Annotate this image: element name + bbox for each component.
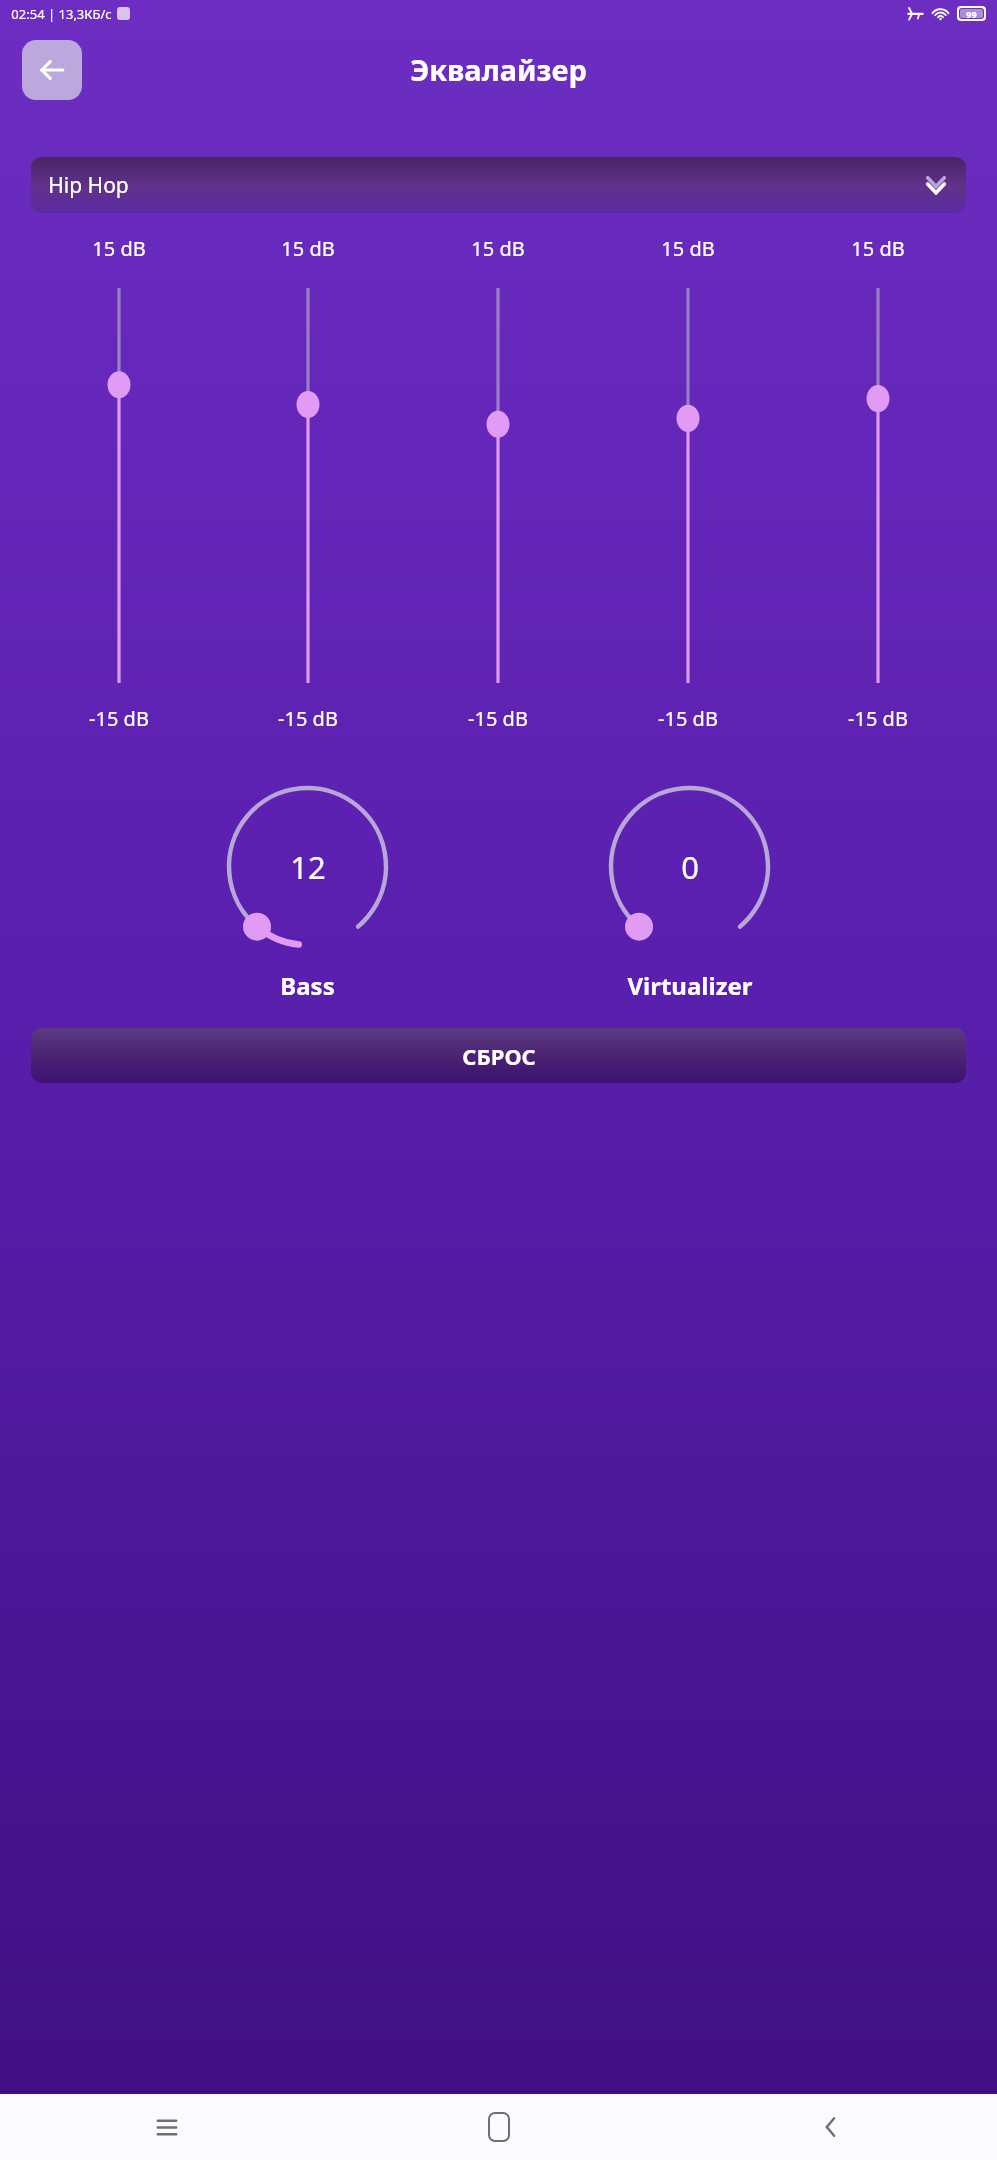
staticText: -15 dB	[278, 705, 338, 732]
staticText: 15 dB	[661, 235, 715, 262]
button[interactable]: Back	[665, 2094, 997, 2160]
staticText: -15 dB	[848, 705, 908, 732]
button[interactable]	[473, 288, 523, 683]
staticText: Эквалайзер	[410, 50, 587, 89]
staticText: Hip Hop	[48, 171, 129, 200]
button[interactable]: Hip Hop	[31, 157, 966, 213]
button[interactable]: Home	[333, 2094, 665, 2160]
staticText: 15 dB	[471, 235, 525, 262]
button[interactable]: Bass level	[215, 774, 400, 959]
staticText: 15 dB	[851, 235, 905, 262]
staticText: 15 dB	[92, 235, 146, 262]
staticText: -15 dB	[89, 705, 149, 732]
button[interactable]: СБРОС	[31, 1028, 966, 1083]
staticText: -15 dB	[468, 705, 528, 732]
button[interactable]: Back	[22, 40, 82, 100]
button[interactable]	[853, 288, 903, 683]
staticText: 99	[966, 8, 977, 20]
button[interactable]: Recent apps	[0, 2094, 333, 2160]
staticText: 15 dB	[281, 235, 335, 262]
staticText: 02:54 | 13,3КБ/с	[11, 5, 112, 23]
button[interactable]	[663, 288, 713, 683]
button[interactable]	[283, 288, 333, 683]
staticText: 0	[681, 846, 699, 888]
staticText: СБРОС	[462, 1041, 536, 1071]
staticText: Bass	[280, 969, 335, 1002]
staticText: 12	[290, 846, 326, 888]
staticText: -15 dB	[658, 705, 718, 732]
button[interactable]: Virtualizer level	[597, 774, 782, 959]
staticText: Virtualizer	[627, 969, 753, 1002]
button[interactable]	[94, 288, 144, 683]
